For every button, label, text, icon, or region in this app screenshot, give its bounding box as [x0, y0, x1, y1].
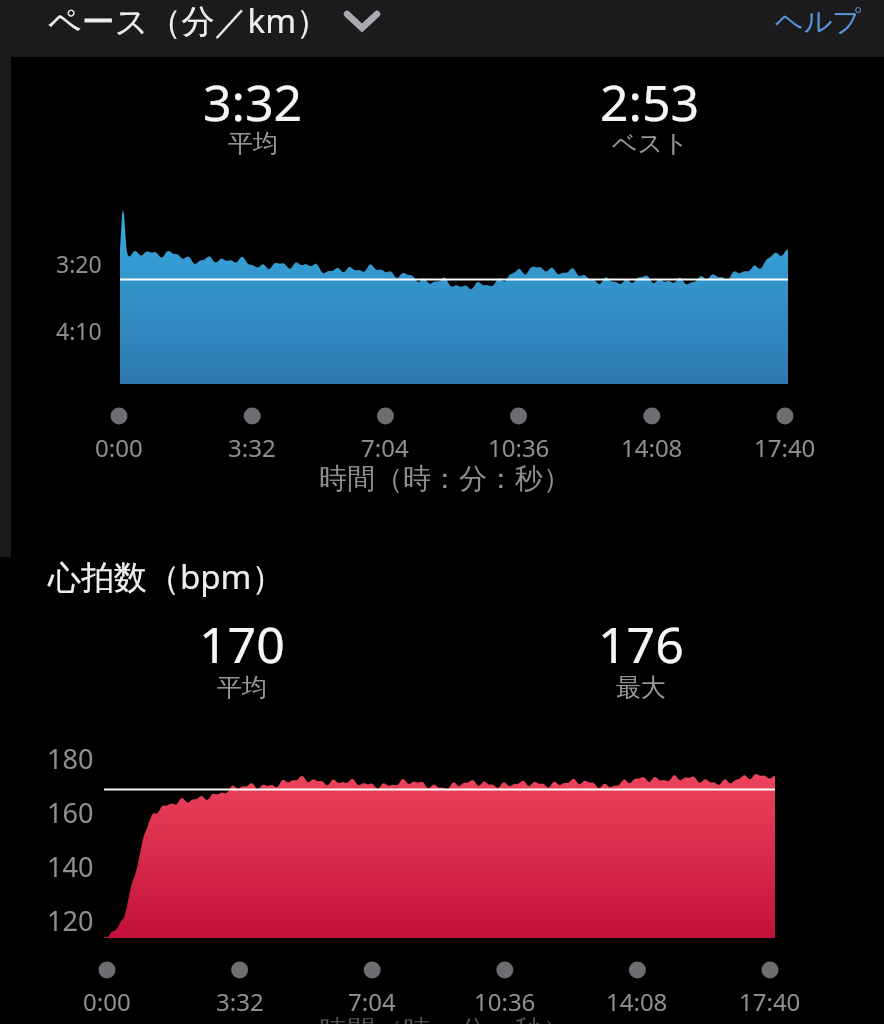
staticText: 0:00	[83, 985, 131, 1018]
staticText: 心拍数（bpm）	[48, 554, 285, 599]
staticText: ベスト	[612, 128, 689, 159]
staticText: 10:36	[474, 985, 536, 1018]
staticText: 120	[47, 902, 94, 939]
staticText: 140	[47, 848, 94, 885]
staticText: 170	[199, 610, 285, 674]
staticText: 時間（時：分：秒）	[319, 461, 571, 496]
staticText: 160	[47, 794, 94, 831]
staticText: 時間（時：分：秒）	[319, 1013, 571, 1024]
staticText: 3:32	[228, 431, 276, 464]
staticText: 7:04	[348, 985, 396, 1018]
staticText: 10:36	[488, 431, 550, 464]
staticText: 平均	[217, 672, 267, 703]
staticText: 最大	[616, 672, 666, 703]
button[interactable]: ヘルプ	[775, 0, 861, 53]
button[interactable]: ペース（分／km）	[48, 0, 330, 52]
staticText: 3:32	[203, 68, 303, 132]
staticText: ペース（分／km）	[48, 0, 330, 43]
staticText: 14:08	[621, 431, 683, 464]
staticText: 180	[47, 740, 94, 777]
staticText: 17:40	[754, 431, 816, 464]
staticText: 17:40	[739, 985, 801, 1018]
staticText: 7:04	[361, 431, 409, 464]
staticText: 0:00	[95, 431, 143, 464]
staticText: 平均	[228, 128, 278, 159]
staticText: ヘルプ	[775, 4, 861, 39]
staticText: 14:08	[606, 985, 668, 1018]
staticText: 2:53	[600, 68, 700, 132]
staticText: 3:20	[56, 248, 102, 279]
staticText: 176	[598, 610, 684, 674]
staticText: 3:32	[216, 985, 264, 1018]
staticText: 4:10	[56, 315, 102, 346]
